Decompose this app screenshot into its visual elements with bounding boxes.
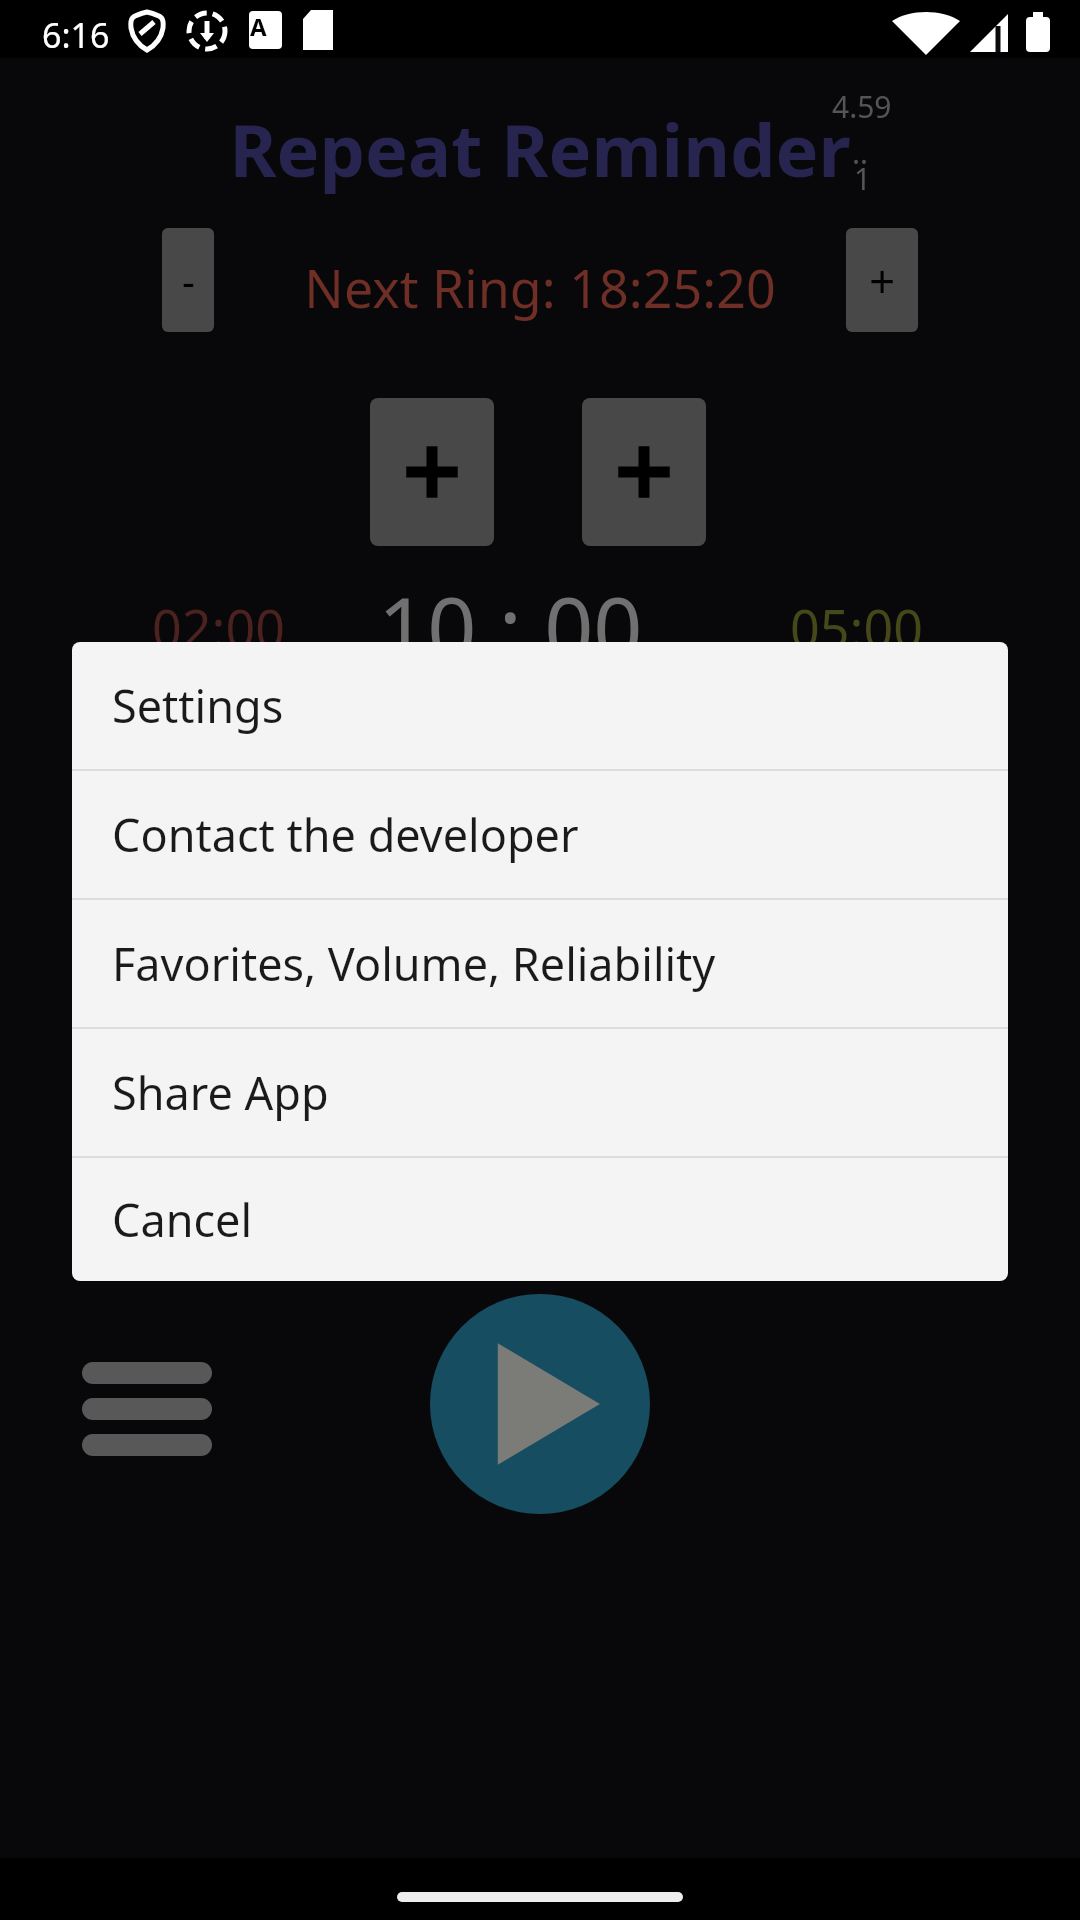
button[interactable] — [370, 398, 494, 546]
button[interactable]: Start — [430, 1294, 650, 1514]
staticText: - — [182, 253, 195, 307]
button[interactable]: Cancel — [72, 1158, 1008, 1281]
button[interactable]: Contact the developer — [72, 771, 1008, 898]
staticText: .. — [852, 132, 869, 173]
staticText: Contact the developer — [112, 804, 579, 865]
button[interactable]: Share App — [72, 1029, 1008, 1156]
staticText: Share App — [112, 1062, 329, 1123]
button[interactable]: + — [846, 228, 918, 332]
staticText: Cancel — [112, 1189, 253, 1250]
staticText: 10 : 00 — [378, 568, 643, 685]
staticText: Next Ring: 18:25:20 — [0, 252, 1080, 323]
staticText: A — [250, 10, 267, 43]
staticText: Repeat Reminder — [0, 100, 1080, 198]
staticText: 1 — [854, 158, 872, 199]
button[interactable] — [582, 398, 706, 546]
staticText: 6:16 — [42, 12, 110, 58]
staticText: Favorites, Volume, Reliability — [112, 933, 716, 994]
staticText: Settings — [112, 675, 284, 736]
button[interactable]: - — [162, 228, 214, 332]
button[interactable]: Menu — [70, 1344, 224, 1464]
button[interactable]: Settings — [72, 642, 1008, 769]
staticText: 4.59 — [832, 86, 892, 127]
staticText: 02:00 — [152, 592, 285, 663]
staticText: + — [869, 249, 896, 312]
staticText: 05:00 — [790, 592, 923, 663]
button[interactable]: Favorites, Volume, Reliability — [72, 900, 1008, 1027]
